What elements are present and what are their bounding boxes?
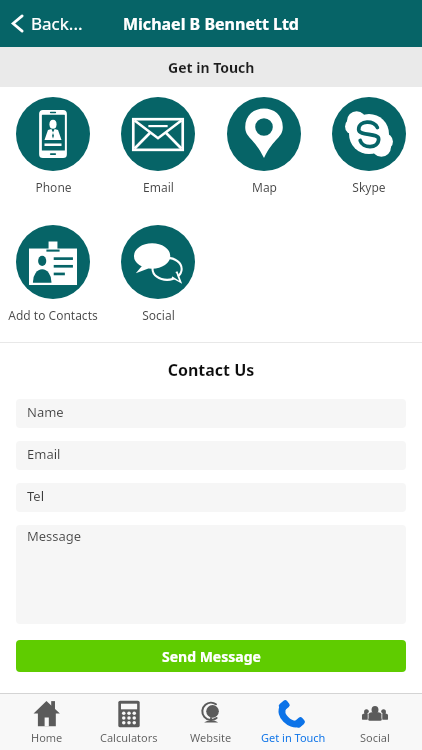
staticText: Get in Touch — [168, 58, 255, 77]
staticText: Skype — [352, 179, 386, 195]
button[interactable]: Message — [16, 525, 406, 624]
button[interactable]: Skype — [317, 97, 421, 195]
button[interactable]: Tel — [16, 483, 406, 512]
staticText: Message — [27, 527, 82, 545]
button[interactable]: Name — [16, 399, 406, 428]
staticText: Add to Contacts — [8, 307, 98, 323]
staticText: Email — [27, 445, 61, 463]
staticText: Phone — [35, 179, 72, 195]
staticText: Name — [27, 403, 64, 421]
button[interactable]: Website — [170, 694, 252, 750]
button[interactable]: Social — [106, 225, 210, 323]
button[interactable]: Email — [106, 97, 210, 195]
staticText: Website — [190, 730, 232, 745]
button[interactable]: Get in Touch — [252, 694, 334, 750]
button[interactable]: Social — [334, 694, 416, 750]
staticText: Michael B Bennett Ltd — [123, 13, 299, 35]
staticText: Email — [143, 179, 174, 195]
staticText: Send Message — [162, 647, 261, 666]
staticText: Home — [31, 730, 63, 745]
staticText: Social — [142, 307, 175, 323]
staticText: Social — [360, 730, 390, 745]
button[interactable]: Home — [6, 694, 88, 750]
button[interactable]: Add to Contacts — [1, 225, 105, 323]
button[interactable]: Map — [212, 97, 316, 195]
staticText: Get in Touch — [261, 730, 326, 745]
button[interactable]: Back... — [0, 0, 95, 47]
button[interactable]: Send Message — [16, 640, 406, 672]
staticText: Map — [252, 179, 277, 195]
staticText: Tel — [27, 487, 45, 505]
button[interactable]: Phone — [1, 97, 105, 195]
button[interactable]: Email — [16, 441, 406, 470]
button[interactable]: Calculators — [88, 694, 170, 750]
staticText: Back... — [31, 12, 83, 35]
staticText: Contact Us — [0, 359, 422, 381]
staticText: Calculators — [100, 730, 158, 745]
